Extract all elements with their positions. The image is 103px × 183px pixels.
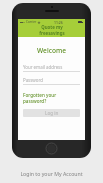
- staticText: 11:26: [54, 20, 63, 25]
- staticText: Log in: [45, 110, 59, 116]
- button[interactable]: Password: [23, 77, 80, 85]
- staticText: Forgotten your password?: [23, 92, 80, 104]
- staticText: freesavings: [39, 30, 65, 36]
- button[interactable]: Your email address: [23, 64, 80, 72]
- staticText: Password: [23, 77, 43, 83]
- staticText: Quote my: [41, 24, 63, 30]
- staticText: Login to your My Account: [0, 170, 103, 177]
- staticText: Carrier: [26, 20, 37, 24]
- button[interactable]: Forgotten your password?: [23, 91, 80, 105]
- staticText: Welcome: [23, 46, 80, 55]
- button[interactable]: Log in: [23, 109, 80, 117]
- staticText: Your email address: [23, 64, 63, 70]
